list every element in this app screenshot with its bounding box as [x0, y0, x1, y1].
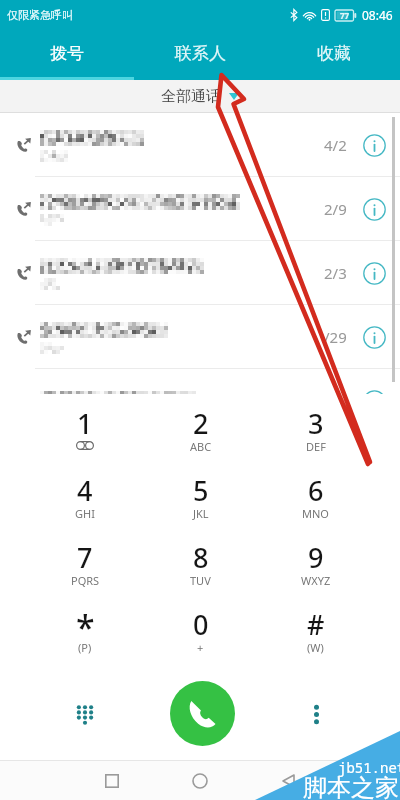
button[interactable]: Call details — [0, 369, 400, 394]
button[interactable]: Call details — [361, 196, 387, 222]
staticText: 0 — [193, 606, 209, 643]
staticText: /29 — [324, 327, 347, 347]
button[interactable]: 联系人 — [134, 30, 267, 77]
button[interactable]: Call details — [361, 132, 387, 158]
button[interactable]: Keypad — [69, 698, 101, 730]
button[interactable]: 收藏 — [267, 30, 400, 77]
button[interactable]: 1 — [27, 394, 143, 461]
staticText: jb51.net — [338, 758, 400, 777]
button[interactable]: 7 — [27, 528, 143, 595]
button[interactable]: 5 — [143, 461, 258, 528]
staticText: 联系人 — [175, 43, 226, 64]
button[interactable]: Home — [186, 767, 214, 795]
button[interactable]: Back — [274, 767, 302, 795]
button[interactable]: 0 — [143, 595, 258, 662]
staticText: JKL — [193, 506, 209, 521]
staticText: ABC — [190, 439, 212, 454]
staticText: GHI — [75, 506, 95, 521]
staticText: 2 — [193, 405, 209, 442]
staticText: 4/2 — [324, 135, 347, 155]
staticText: (W) — [307, 640, 324, 655]
staticText: (P) — [78, 640, 92, 655]
button[interactable]: 全部通话 — [0, 80, 400, 113]
staticText: 仅限紧急呼叫 — [7, 8, 73, 22]
staticText: 77 — [340, 10, 350, 21]
button[interactable]: 拨号 — [0, 30, 134, 77]
staticText: 3 — [308, 405, 324, 442]
button[interactable]: # — [258, 595, 373, 662]
button[interactable]: 6 — [258, 461, 373, 528]
button[interactable]: 3 — [258, 394, 373, 461]
staticText: 7 — [77, 539, 93, 576]
button[interactable]: 9 — [258, 528, 373, 595]
button[interactable]: /29 — [0, 305, 400, 369]
staticText: 4 — [77, 472, 93, 509]
button[interactable]: 2 — [143, 394, 258, 461]
staticText: 全部通话 — [161, 87, 221, 106]
staticText: 6 — [308, 472, 324, 509]
staticText: MNO — [302, 506, 329, 521]
staticText: 08:46 — [362, 7, 393, 23]
staticText: # — [307, 606, 325, 643]
button[interactable]: * — [27, 595, 143, 662]
staticText: DEF — [306, 439, 326, 454]
staticText: 1 — [77, 405, 93, 442]
staticText: + — [197, 640, 204, 655]
staticText: 8 — [193, 539, 209, 576]
button[interactable]: Call details — [361, 388, 387, 394]
button[interactable]: 4/2 — [0, 113, 400, 177]
staticText: 拨号 — [50, 43, 84, 64]
button[interactable]: More options — [300, 698, 332, 730]
button[interactable]: Call details — [361, 260, 387, 286]
staticText: PQRS — [71, 573, 100, 588]
button[interactable]: Call — [170, 681, 235, 746]
button[interactable]: 2/3 — [0, 241, 400, 305]
staticText: 5 — [193, 472, 209, 509]
button[interactable]: 4 — [27, 461, 143, 528]
staticText: 2/3 — [324, 263, 347, 283]
staticText: 脚本之家 — [303, 773, 399, 800]
staticText: 9 — [308, 539, 324, 576]
button[interactable]: 8 — [143, 528, 258, 595]
button[interactable]: 2/9 — [0, 177, 400, 241]
staticText: TUV — [190, 573, 211, 588]
button[interactable]: Call details — [361, 324, 387, 350]
staticText: * — [76, 604, 95, 650]
staticText: 2/9 — [324, 199, 347, 219]
button[interactable]: Recents — [98, 767, 126, 795]
staticText: 收藏 — [317, 43, 351, 64]
staticText: WXYZ — [301, 573, 331, 588]
